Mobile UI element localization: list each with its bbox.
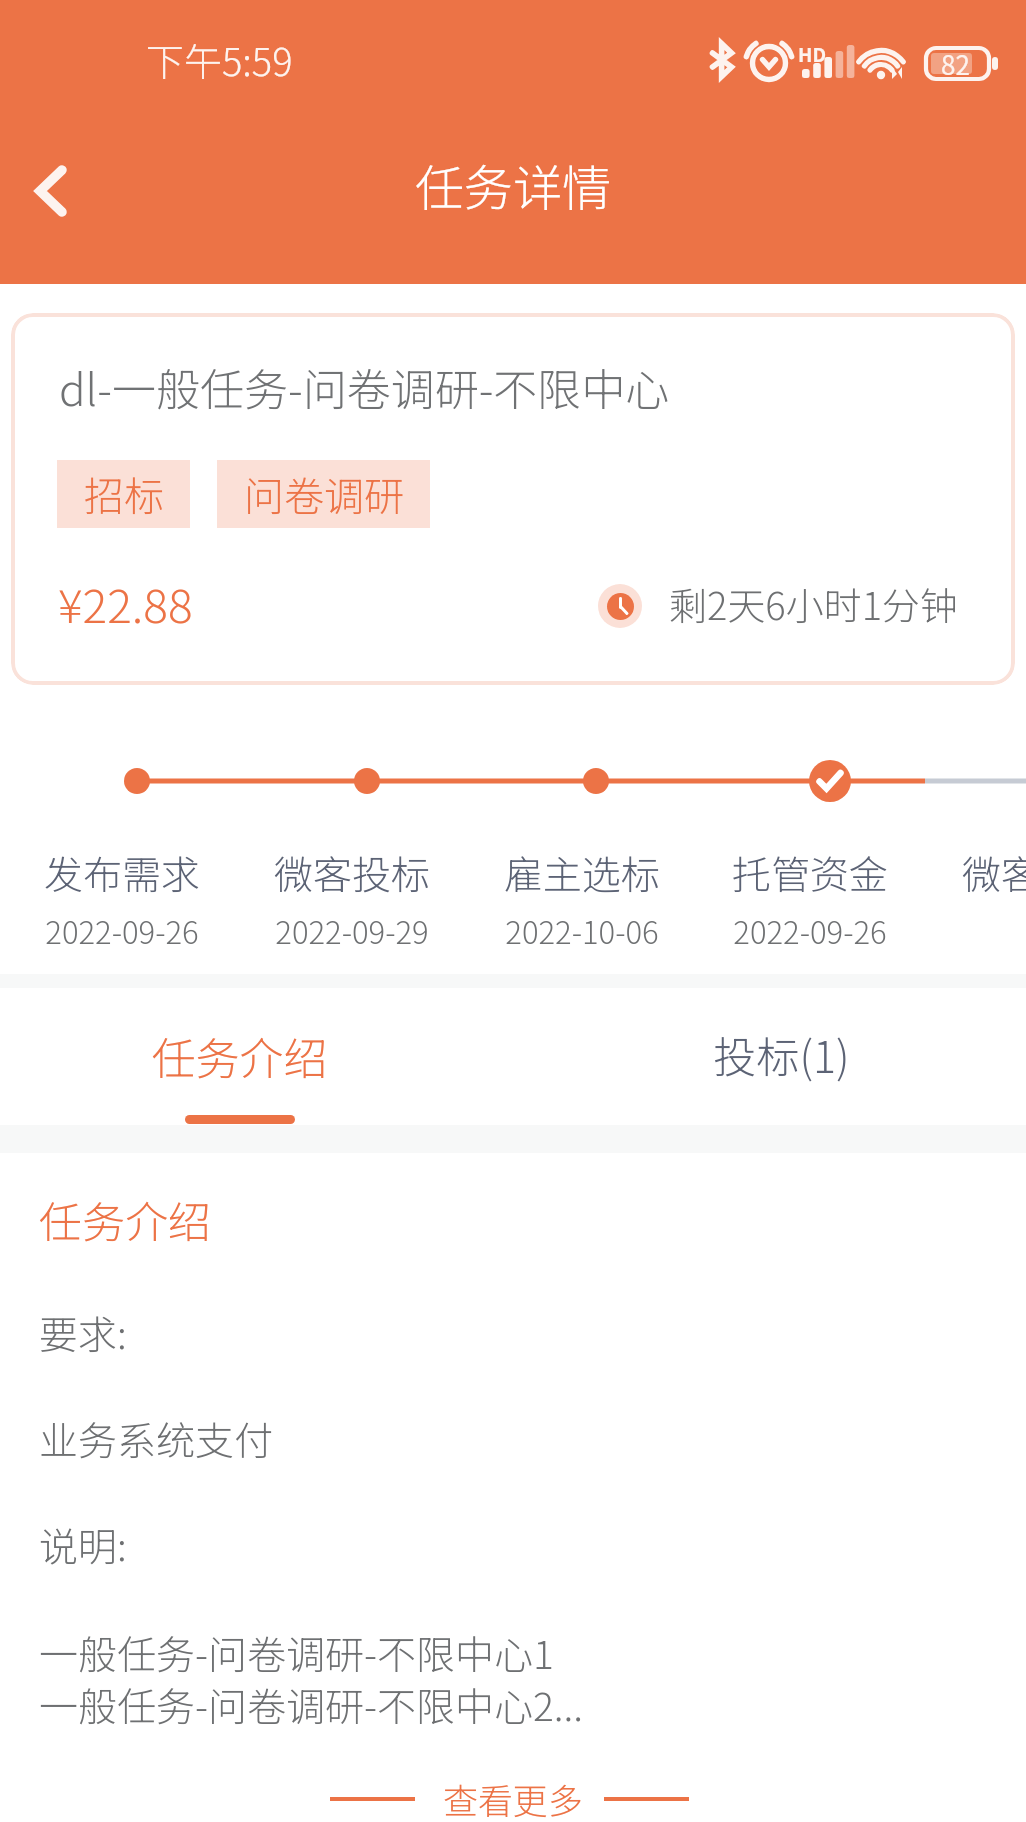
staticText: 剩2天6小时1分钟 <box>669 576 958 631</box>
button[interactable]: 任务介绍 <box>0 988 513 1125</box>
button[interactable]: 投标(1) <box>513 988 1026 1125</box>
staticText: 雇主选标 <box>452 844 712 900</box>
staticText: 82 <box>941 45 970 83</box>
staticText: 一般任务-问卷调研-不限中心1 <box>39 1624 554 1680</box>
staticText: 微客交稿 <box>910 844 1026 900</box>
staticText: 2022-09-26 <box>680 908 940 953</box>
staticText: 一般任务-问卷调研-不限中心2... <box>39 1676 584 1732</box>
staticText: HD <box>798 40 826 68</box>
staticText: 招标 <box>84 465 164 523</box>
staticText: 任务介绍 <box>0 1024 496 1088</box>
staticText: 要求: <box>39 1304 127 1360</box>
staticText: 任务详情 <box>415 149 612 220</box>
button[interactable]: dl-一般任务-问卷调研-不限中心 <box>11 313 1015 685</box>
staticText: 微客投标 <box>222 844 482 900</box>
staticText: 业务系统支付 <box>39 1410 274 1466</box>
staticText: 托管资金 <box>680 844 940 900</box>
staticText: 发布需求 <box>0 844 252 900</box>
button[interactable]: Back <box>8 148 94 234</box>
staticText: 2022-09-26 <box>0 908 252 953</box>
staticText: 问卷调研 <box>244 465 404 523</box>
staticText: 任务介绍 <box>39 1188 211 1250</box>
staticText: 2022-10-06 <box>452 908 712 953</box>
staticText: 查看更多 <box>443 1773 584 1822</box>
staticText: ¥22.88 <box>58 570 193 637</box>
staticText: dl-一般任务-问卷调研-不限中心 <box>59 355 670 419</box>
staticText: 投标(1) <box>525 1023 1026 1085</box>
staticText: 下午5:59 <box>146 32 293 87</box>
button[interactable]: 查看更多 <box>10 1773 1012 1822</box>
staticText: 2022-09-29 <box>222 908 482 953</box>
staticText: 说明: <box>39 1516 127 1572</box>
